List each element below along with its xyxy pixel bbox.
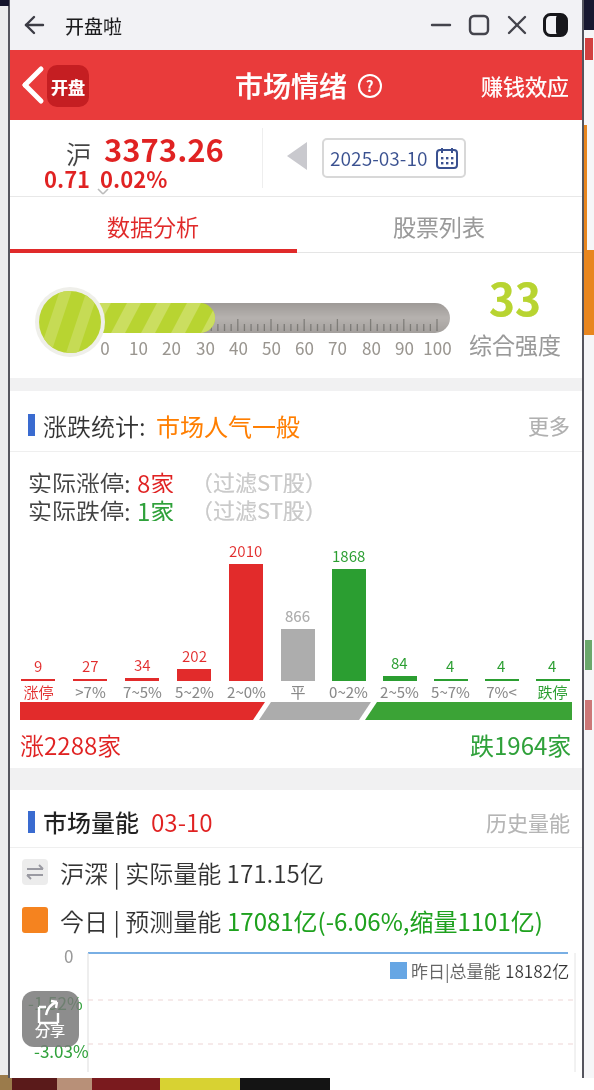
staticText: 4 [446,655,455,677]
button[interactable]: 分享 [22,991,79,1047]
staticText: （过滤ST股） [191,493,327,521]
staticText: 历史量能 [486,807,570,837]
staticText: 2~0% [227,681,266,702]
staticText: 17081亿(-6.06%,缩量1101亿) [227,903,543,938]
staticText: 2010 [229,540,263,562]
staticText: 市场量能 [43,804,139,839]
button[interactable] [468,14,490,36]
staticText: 今日 | 预测量能 [60,903,227,938]
staticText: 20 [162,335,181,360]
staticText: 50 [262,335,281,360]
staticText: 33 [489,265,541,329]
staticText: 202 [182,645,207,667]
staticText: 综合强度 [469,327,561,360]
staticText: 更多 [528,410,570,440]
staticText: 7%< [486,681,517,702]
staticText: 沪深 | 实际量能 171.15亿 [60,855,324,890]
button[interactable]: 2025-03-10 [322,138,466,178]
staticText: 27 [82,655,99,677]
staticText: 沪 [66,135,92,171]
staticText: 2025-03-10 [330,144,428,172]
staticText: 18182亿 [505,958,570,983]
button[interactable] [285,140,309,172]
button[interactable]: 赚钱效应 [481,69,570,101]
button[interactable] [543,13,568,37]
staticText: ? [366,75,374,97]
staticText: 5~7% [431,681,470,702]
button[interactable] [20,66,46,104]
staticText: 3373.26 [104,126,224,171]
staticText: 9 [34,655,43,677]
staticText: >7% [75,681,106,702]
staticText: 数据分析 [107,209,199,242]
staticText: 开盘啦 [65,12,123,40]
staticText: 100 [423,335,452,360]
staticText: （过滤ST股） [191,465,327,493]
staticText: 平 [290,681,306,702]
staticText: 34 [134,654,151,676]
staticText: 0~2% [329,681,368,702]
staticText: 市场情绪 [235,65,348,106]
button[interactable]: 更多 [528,410,570,440]
staticText: 市场人气一般 [156,408,300,443]
staticText: 0.71 0.02% [44,162,168,194]
staticText: 1家 [137,493,175,521]
staticText: 0 [100,335,110,360]
staticText: 7~5% [123,681,162,702]
button[interactable]: 开盘 [47,65,89,107]
staticText: 70 [328,335,347,360]
staticText: 昨日|总量能 [411,958,505,983]
staticText: -3.03% [34,1038,89,1063]
staticText: 8家 [137,465,175,493]
staticText: 5~2% [175,681,214,702]
button[interactable] [430,14,452,36]
staticText: 分享 [35,1019,66,1041]
button[interactable] [506,14,528,36]
staticText: 跌1964家 [470,727,572,762]
staticText: 涨停 [23,681,54,702]
staticText: 涨跌统计: [43,408,146,443]
button[interactable] [24,15,44,35]
button[interactable]: 数据分析 [10,197,296,253]
staticText: 90 [395,335,414,360]
staticText: 40 [229,335,248,360]
button[interactable]: 沪 [10,120,582,196]
staticText: 涨2288家 [20,727,122,762]
staticText: 10 [129,335,148,360]
button[interactable]: 股票列表 [296,197,582,253]
staticText: 4 [497,655,506,677]
staticText: 84 [391,652,408,674]
staticText: 开盘 [51,74,85,99]
staticText: 4 [548,655,557,677]
staticText: 跌停 [537,681,568,702]
staticText: 2~5% [380,681,419,702]
staticText: 0 [64,943,74,968]
staticText: 股票列表 [393,209,485,242]
staticText: 实际跌停: [28,493,131,521]
staticText: 1868 [332,545,366,567]
staticText: 866 [285,605,310,627]
staticText: 赚钱效应 [481,69,570,101]
button[interactable]: 历史量能 [486,807,570,837]
staticText: 60 [295,335,314,360]
staticText: 03-10 [151,804,213,839]
staticText: 80 [362,335,381,360]
staticText: -1.52% [28,990,83,1015]
staticText: 实际涨停: [28,465,131,493]
staticText: 30 [196,335,215,360]
